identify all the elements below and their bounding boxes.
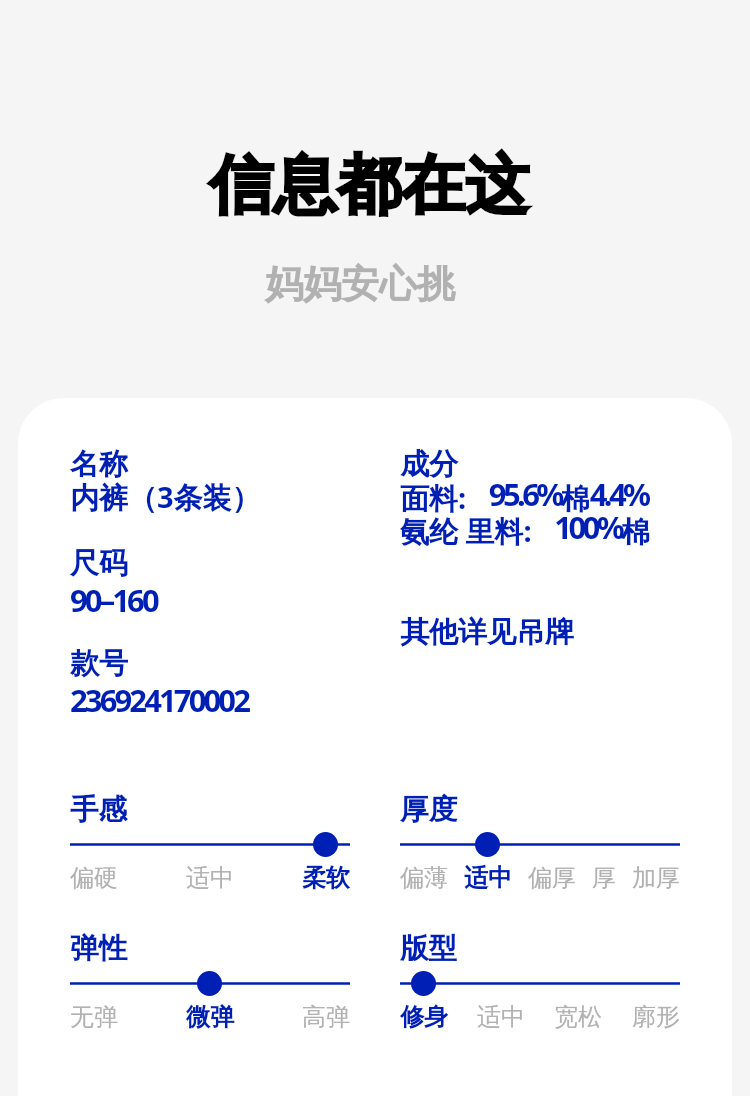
staticText: 内裤（3条装） [70, 477, 261, 517]
staticText: 成分 [400, 446, 458, 483]
staticText: 微弹 [186, 1002, 234, 1032]
button[interactable]: 无弹 [70, 1002, 118, 1032]
button[interactable]: 修身 [400, 1002, 448, 1032]
button[interactable]: 加厚 [632, 863, 680, 893]
staticText: 适中 [186, 863, 234, 893]
button[interactable]: 宽松 [554, 1002, 602, 1032]
staticText: 名称 [70, 446, 128, 483]
staticText: 适中 [464, 863, 512, 893]
staticText: 厚 [592, 863, 616, 893]
button[interactable]: 适中 [477, 1002, 525, 1032]
staticText: 弹性 [70, 931, 127, 967]
button[interactable]: 厚 [592, 863, 616, 893]
button[interactable]: 偏厚 [528, 863, 576, 893]
staticText: 妈妈安心挑 [0, 260, 735, 308]
button[interactable]: 偏硬 [70, 863, 118, 893]
button[interactable]: 柔软 [302, 863, 350, 893]
staticText: 偏厚 [528, 863, 576, 893]
staticText: 偏薄 [400, 863, 448, 893]
staticText: 适中 [477, 1002, 525, 1032]
staticText: 面料: 95.6%棉4.4% [400, 473, 648, 518]
staticText: 236924170002 [70, 679, 248, 721]
staticText: 信息都在这 [0, 145, 744, 226]
staticText: 偏硬 [70, 863, 118, 893]
staticText: 90–160 [70, 579, 157, 621]
button[interactable]: 高弹 [302, 1002, 350, 1032]
staticText: 柔软 [302, 863, 350, 893]
staticText: 尺码 [70, 545, 128, 582]
staticText: 款号 [70, 645, 128, 682]
staticText: 手感 [70, 792, 127, 828]
button[interactable]: 廓形 [632, 1002, 680, 1032]
staticText: 版型 [400, 931, 457, 967]
staticText: 廓形 [632, 1002, 680, 1032]
staticText: 厚度 [400, 792, 457, 828]
staticText: 无弹 [70, 1002, 118, 1032]
staticText: 加厚 [632, 863, 680, 893]
button[interactable]: 微弹 [186, 1002, 234, 1032]
staticText: 宽松 [554, 1002, 602, 1032]
staticText: 氨纶 里料: 100%棉 [400, 506, 651, 551]
button[interactable]: 适中 [186, 863, 234, 893]
staticText: 高弹 [302, 1002, 350, 1032]
staticText: 修身 [400, 1002, 448, 1032]
button[interactable]: 偏薄 [400, 863, 448, 893]
staticText: 其他详见吊牌 [400, 614, 574, 651]
button[interactable]: 适中 [464, 863, 512, 893]
